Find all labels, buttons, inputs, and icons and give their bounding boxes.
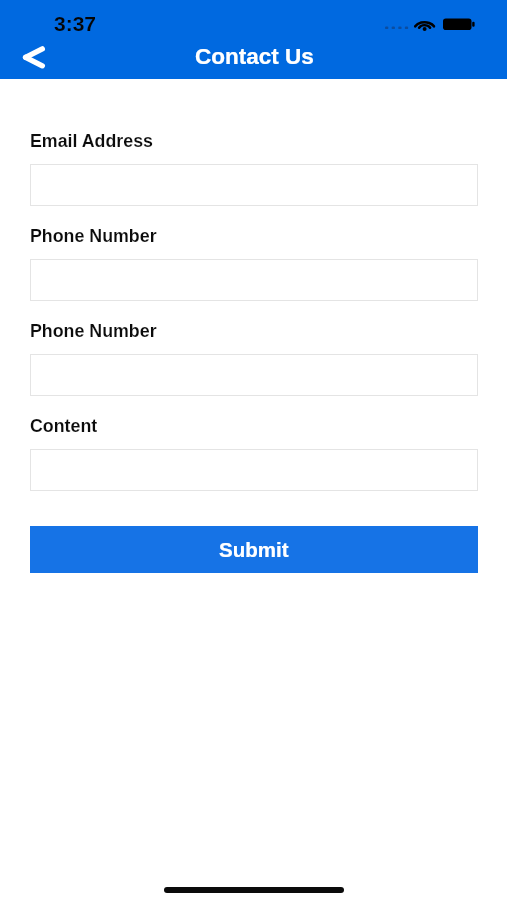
button[interactable]: Submit [30,526,478,573]
button[interactable] [30,164,478,206]
button[interactable]: Back [2,34,48,80]
button[interactable] [30,259,478,301]
staticText: Content [30,416,98,436]
staticText: 3:37 [54,12,97,35]
staticText: Submit [219,538,289,561]
staticText: Phone Number [30,226,157,246]
staticText: Phone Number [30,321,157,341]
staticText: Contact Us [195,44,314,69]
staticText: Email Address [30,131,153,151]
button[interactable] [30,449,478,491]
button[interactable] [30,354,478,396]
